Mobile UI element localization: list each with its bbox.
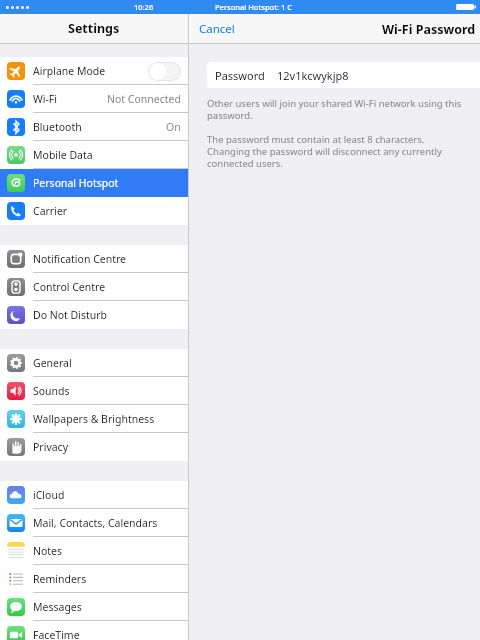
button[interactable]: Wi-Fi: [0, 85, 188, 113]
staticText: Privacy: [33, 440, 69, 454]
button[interactable]: Airplane Mode: [0, 57, 188, 85]
staticText: Control Centre: [33, 280, 106, 294]
staticText: Mail, Contacts, Calendars: [33, 516, 158, 530]
button[interactable]: Personal Hotspot: [0, 169, 188, 197]
button[interactable]: Notes: [0, 537, 188, 565]
button[interactable]: Control Centre: [0, 273, 188, 301]
staticText: Airplane Mode: [33, 64, 106, 78]
staticText: Settings: [68, 20, 120, 37]
button[interactable]: Carrier: [0, 197, 188, 225]
staticText: Wi-Fi: [33, 92, 58, 106]
staticText: Notes: [33, 544, 63, 558]
button[interactable]: Notification Centre: [0, 245, 188, 273]
staticText: Carrier: [33, 204, 68, 218]
staticText: Bluetooth: [33, 120, 82, 134]
staticText: Do Not Disturb: [33, 308, 108, 322]
staticText: Password: [215, 68, 265, 83]
button[interactable]: Privacy: [0, 433, 188, 461]
staticText: 10:26: [134, 2, 154, 12]
staticText: Not Connected: [107, 92, 181, 106]
staticText: Other users will join your shared Wi-Fi …: [207, 97, 462, 122]
staticText: Personal Hotspot: 1 C: [215, 2, 293, 12]
staticText: Personal Hotspot: [33, 176, 119, 190]
staticText: Cancel: [199, 21, 235, 37]
staticText: Reminders: [33, 572, 87, 586]
button[interactable]: Bluetooth: [0, 113, 188, 141]
staticText: On: [166, 120, 181, 134]
staticText: Messages: [33, 600, 82, 614]
button[interactable]: iCloud: [0, 481, 188, 509]
staticText: The password must contain at least 8 cha…: [207, 133, 442, 170]
staticText: Mobile Data: [33, 148, 93, 162]
button[interactable]: Mail, Contacts, Calendars: [0, 509, 188, 537]
button[interactable]: Cancel: [189, 15, 245, 43]
button[interactable]: Wallpapers & Brightness: [0, 405, 188, 433]
button[interactable]: FaceTime: [0, 621, 188, 640]
staticText: 12v1kcwykjp8: [277, 68, 349, 83]
button[interactable]: Mobile Data: [0, 141, 188, 169]
button[interactable]: Messages: [0, 593, 188, 621]
staticText: FaceTime: [33, 628, 80, 640]
staticText: Notification Centre: [33, 252, 127, 266]
button[interactable]: Reminders: [0, 565, 188, 593]
staticText: Wallpapers & Brightness: [33, 412, 155, 426]
staticText: iCloud: [33, 488, 65, 502]
staticText: Sounds: [33, 384, 70, 398]
button[interactable]: Do Not Disturb: [0, 301, 188, 329]
button[interactable]: General: [0, 349, 188, 377]
button[interactable]: Airplane Mode toggle: [149, 63, 180, 80]
button[interactable]: Sounds: [0, 377, 188, 405]
staticText: General: [33, 356, 72, 370]
staticText: Wi-Fi Password: [382, 21, 476, 38]
button[interactable]: Password: [207, 62, 480, 88]
